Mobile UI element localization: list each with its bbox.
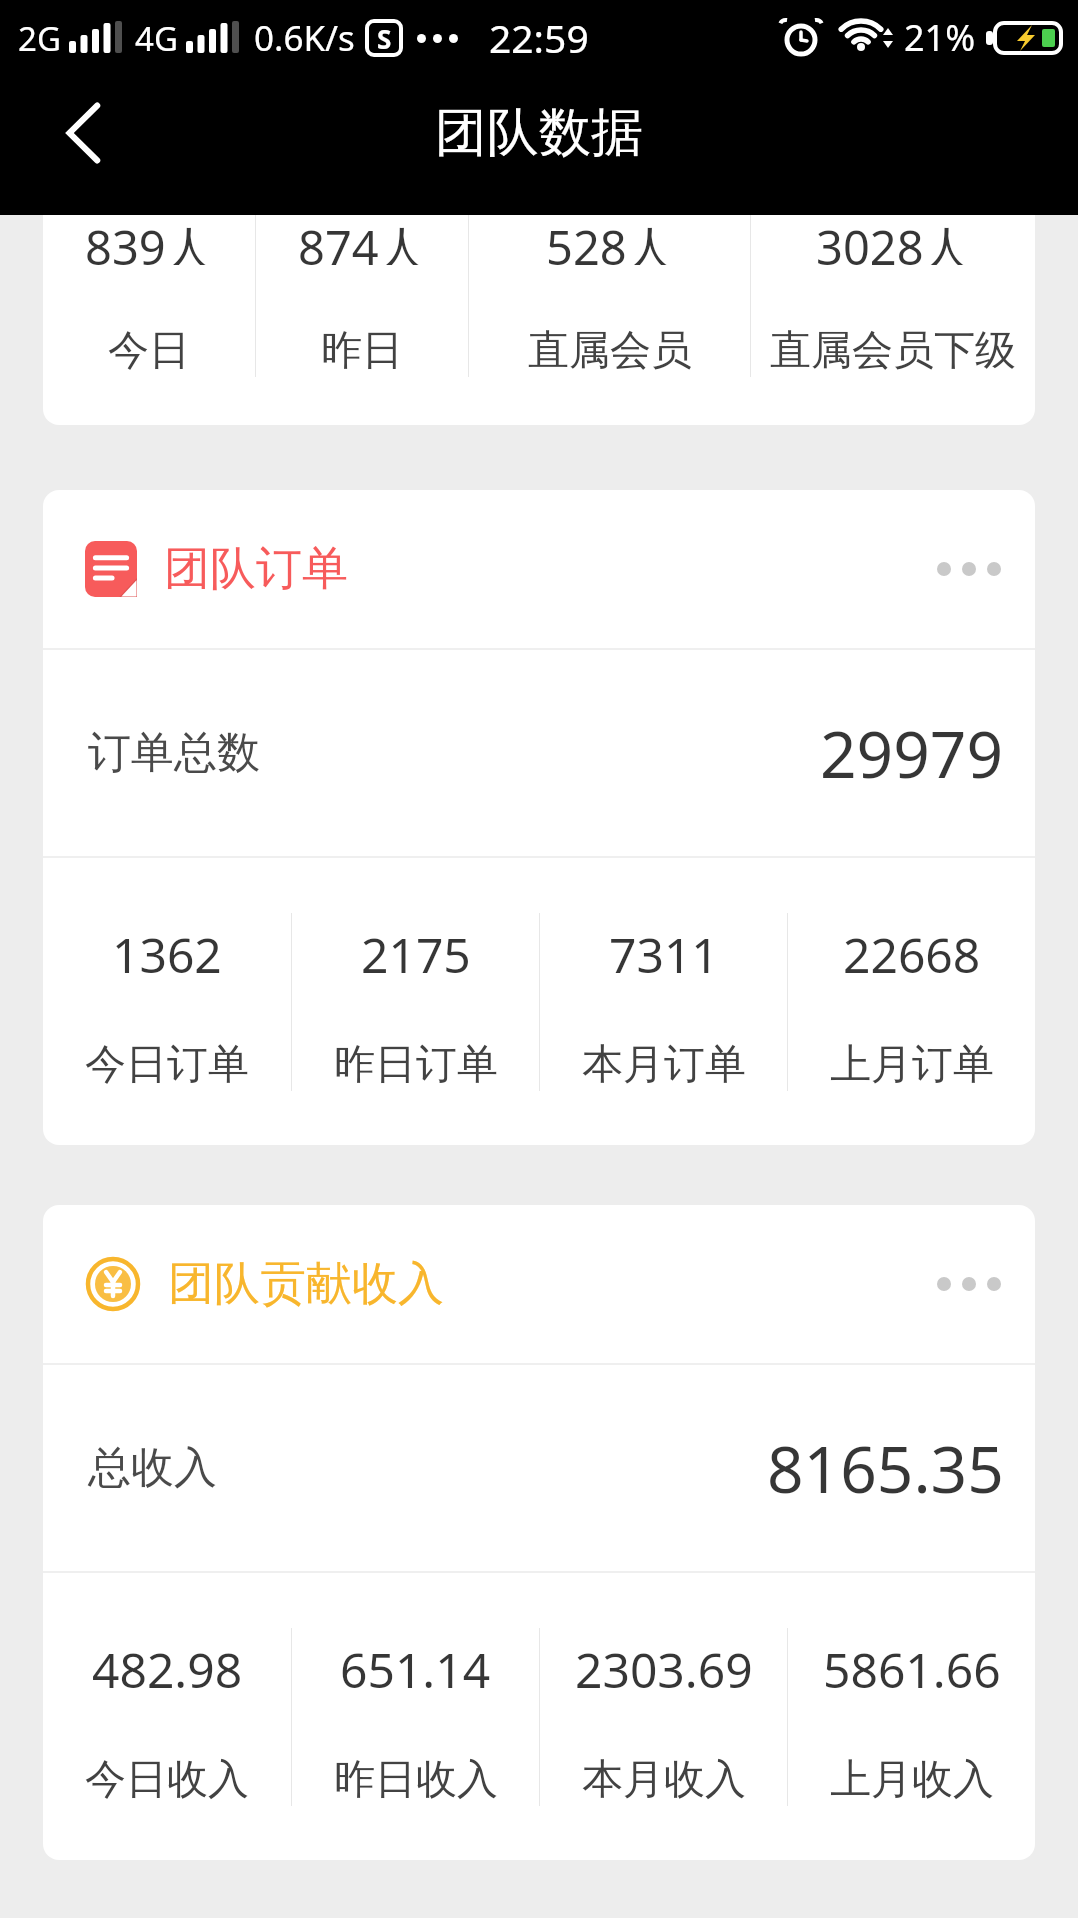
staticText: 21% [904, 13, 976, 62]
staticText: S [377, 21, 392, 56]
button[interactable]: 482.98 [43, 1573, 291, 1860]
staticText: 本月订单 [582, 1039, 746, 1091]
button[interactable]: 7311 [540, 858, 787, 1145]
staticText: 2303.69 [575, 1637, 753, 1693]
button[interactable]: 528人 [469, 215, 750, 375]
staticText: 上月收入 [830, 1754, 994, 1806]
button[interactable]: 2303.69 [540, 1573, 787, 1860]
staticText: 昨日订单 [334, 1039, 498, 1091]
button[interactable] [937, 562, 1001, 576]
staticText: 总收入 [88, 1441, 217, 1495]
staticText: 团队贡献收入 [168, 1255, 444, 1313]
staticText: 7311 [609, 922, 719, 978]
staticText: 直属会员下级 [770, 325, 1016, 375]
staticText: 订单总数 [88, 726, 260, 780]
button[interactable]: 874人 [256, 215, 468, 375]
staticText: 2G [18, 16, 61, 61]
staticText: 昨日 [321, 325, 403, 375]
button[interactable]: 839人 [43, 215, 255, 375]
button[interactable]: 3028人 [751, 215, 1035, 375]
staticText: 团队订单 [164, 540, 348, 598]
staticText: 今日收入 [85, 1754, 249, 1806]
button[interactable] [937, 1277, 1001, 1291]
staticText: 团队数据 [435, 100, 643, 166]
button[interactable]: 2175 [292, 858, 539, 1145]
staticText: 2175 [361, 922, 471, 978]
staticText: 482.98 [92, 1637, 243, 1693]
staticText: 今日 [108, 325, 190, 375]
staticText: 今日订单 [85, 1039, 249, 1091]
staticText: 22668 [843, 922, 981, 978]
button[interactable]: 5861.66 [788, 1573, 1035, 1860]
staticText: 8165.35 [767, 1425, 1004, 1512]
staticText: 本月收入 [582, 1754, 746, 1806]
button[interactable]: 651.14 [292, 1573, 539, 1860]
staticText: 528人 [546, 215, 674, 265]
staticText: 3028人 [816, 215, 971, 265]
button[interactable] [46, 96, 120, 170]
staticText: 0.6K/s [254, 14, 355, 62]
staticText: 651.14 [340, 1637, 491, 1693]
staticText: 昨日收入 [334, 1754, 498, 1806]
staticText: 29979 [820, 710, 1004, 797]
staticText: 839人 [85, 215, 213, 265]
staticText: 22:59 [489, 11, 589, 64]
staticText: 4G [135, 16, 178, 61]
staticText: 5861.66 [823, 1637, 1001, 1693]
staticText: 直属会员 [528, 325, 692, 375]
button[interactable]: 22668 [788, 858, 1035, 1145]
staticText: 上月订单 [830, 1039, 994, 1091]
staticText: 874人 [298, 215, 426, 265]
staticText: 1362 [112, 922, 222, 978]
button[interactable]: 1362 [43, 858, 291, 1145]
